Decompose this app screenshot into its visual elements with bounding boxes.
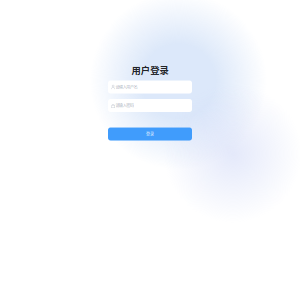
button[interactable]: 登录 [108, 127, 192, 140]
button[interactable]: 请输入用户名 [108, 80, 192, 93]
button[interactable]: 请输入密码 [108, 99, 192, 112]
staticText: 登录 [146, 131, 154, 137]
staticText: 请输入用户名 [115, 84, 138, 90]
staticText: 用户登录 [131, 63, 169, 77]
staticText: 请输入密码 [115, 103, 134, 108]
